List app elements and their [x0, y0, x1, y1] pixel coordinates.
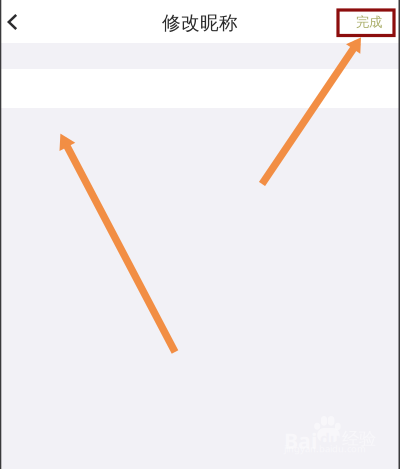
staticText: 完成	[356, 14, 382, 30]
button[interactable]: Back	[0, 5, 27, 39]
button[interactable]: Nickname	[0, 69, 400, 108]
button[interactable]: 完成	[344, 9, 394, 35]
staticText: 修改昵称	[162, 11, 238, 34]
